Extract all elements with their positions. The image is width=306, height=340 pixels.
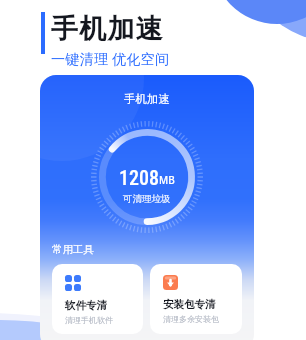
button[interactable]: 软件专清 — [52, 264, 143, 334]
staticText: 常用工具 — [52, 243, 94, 256]
staticText: 手机加速 — [124, 92, 170, 106]
staticText: 手机加速 — [51, 12, 164, 46]
staticText: 安装包专清 — [163, 298, 216, 311]
staticText: 软件专清 — [65, 299, 107, 312]
staticText: 清理多余安装包 — [163, 314, 219, 324]
staticText: MB — [159, 173, 175, 187]
staticText: 一键清理 优化空间 — [51, 49, 170, 68]
button[interactable]: 安装包专清 — [150, 264, 242, 334]
staticText: 清理手机软件 — [65, 315, 113, 325]
staticText: 1208 — [119, 166, 159, 189]
staticText: 可清理垃圾 — [123, 193, 171, 205]
